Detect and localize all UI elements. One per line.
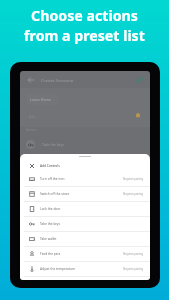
staticText: Actions xyxy=(26,128,37,132)
staticText: Take wallet xyxy=(40,237,57,241)
staticText: Lock the door xyxy=(40,207,61,211)
button[interactable]: Adjust the temperature xyxy=(29,262,144,276)
staticText: Turn off the iron xyxy=(40,177,65,181)
button[interactable]: Take the keys xyxy=(26,137,150,151)
button[interactable]: Close xyxy=(29,160,150,172)
other: Close xyxy=(29,163,35,169)
button[interactable]: Save scenario xyxy=(135,75,144,84)
button[interactable]: Turn off the iron xyxy=(29,172,144,186)
staticText: Requires pairing xyxy=(123,252,144,256)
button[interactable]: Take wallet xyxy=(29,232,144,246)
staticText: from a preset list xyxy=(24,26,145,45)
button[interactable]: Switch off the stove xyxy=(29,187,144,201)
staticText: Requires pairing xyxy=(123,177,144,181)
staticText: Take the keys xyxy=(40,222,60,226)
staticText: Requires pairing xyxy=(123,192,144,196)
staticText: Adjust the temperature xyxy=(40,267,75,271)
staticText: Choose actions xyxy=(31,6,138,25)
staticText: Leave Home xyxy=(30,97,51,102)
button[interactable]: Back xyxy=(27,76,35,84)
staticText: Requires pairing xyxy=(123,267,144,271)
button[interactable]: Feed the pets xyxy=(29,247,144,261)
button[interactable]: Lock the door xyxy=(29,202,144,216)
button[interactable]: Take the keys xyxy=(29,217,144,231)
staticText: Add xyxy=(29,114,36,119)
staticText: Switch off the stove xyxy=(40,192,70,196)
staticText: Take the keys xyxy=(42,142,64,147)
staticText: Feed the pets xyxy=(40,252,61,256)
staticText: Create Scenario xyxy=(41,77,74,83)
staticText: Add Controls xyxy=(40,164,60,168)
